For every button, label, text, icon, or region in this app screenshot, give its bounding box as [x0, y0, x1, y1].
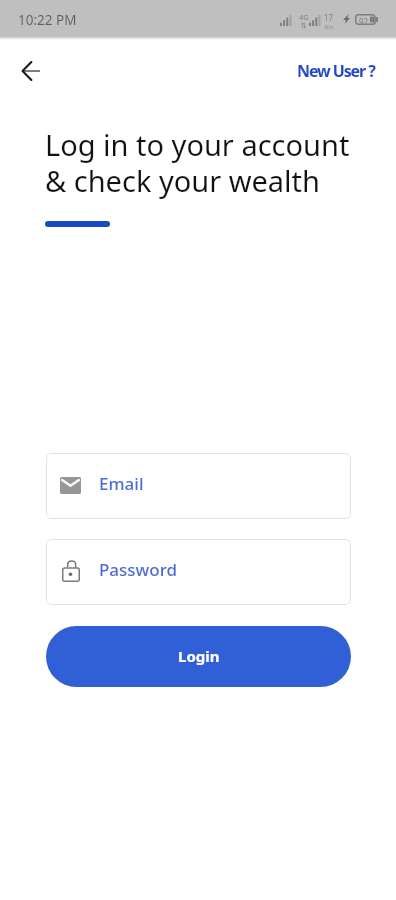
button[interactable]: Email [46, 453, 351, 519]
staticText: Log in to your account [45, 125, 350, 164]
staticText: 17 [324, 12, 334, 23]
staticText: Login [178, 646, 220, 666]
staticText: New User ? [297, 60, 375, 82]
staticText: Email [99, 472, 144, 495]
button[interactable]: Login [46, 626, 351, 687]
button[interactable]: New User ? [283, 51, 389, 91]
staticText: & check your wealth [45, 161, 320, 200]
button[interactable]: Back [11, 51, 51, 91]
staticText: ⇅ [301, 22, 307, 30]
staticText: K/s [325, 23, 334, 30]
staticText: Password [99, 558, 178, 581]
button[interactable]: Password [46, 539, 351, 605]
staticText: 4G [299, 12, 309, 22]
staticText: 92 [359, 16, 369, 27]
staticText: 10:22 PM [18, 11, 77, 29]
